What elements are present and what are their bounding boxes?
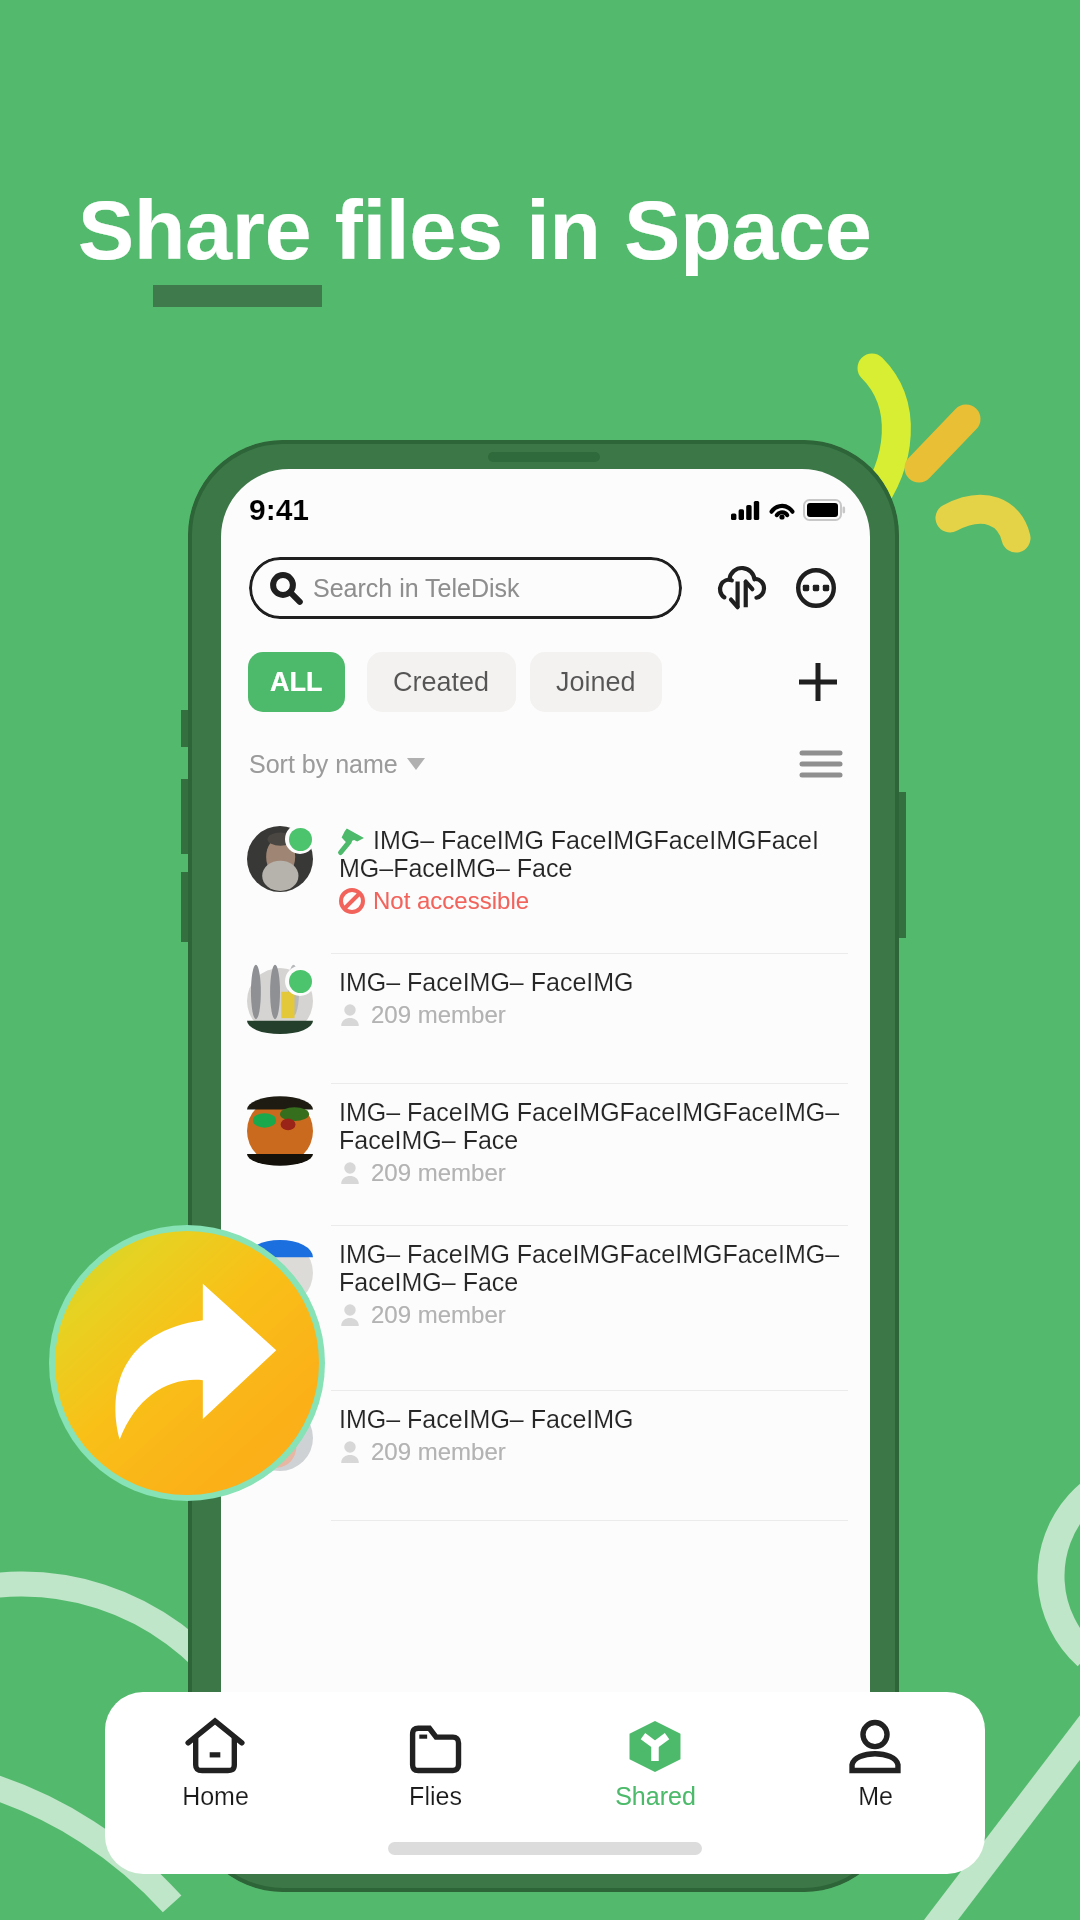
button[interactable]: IMG– FaceIMG FaceIMGFaceIMGFaceIMG– xyxy=(221,1084,870,1225)
button[interactable]: Share xyxy=(55,1231,319,1495)
staticText: Created xyxy=(393,667,490,697)
button[interactable]: Transfers xyxy=(710,556,774,620)
button[interactable]: IMG– FaceIMG– FaceIMG xyxy=(221,1391,870,1520)
staticText: 209 member xyxy=(371,1438,506,1465)
staticText: Me xyxy=(858,1782,893,1810)
button[interactable]: IMG– FaceIMG– FaceIMG xyxy=(221,954,870,1083)
button[interactable]: Me xyxy=(765,1720,985,1810)
staticText: MG–FaceIMG– Face xyxy=(339,854,573,882)
button[interactable]: Home xyxy=(105,1720,325,1810)
button[interactable]: Flies xyxy=(325,1720,545,1810)
staticText: Sort by name xyxy=(249,750,398,778)
button[interactable]: IMG– FaceIMG FaceIMGFaceIMGFaceI xyxy=(221,812,870,953)
button[interactable]: Sort by name xyxy=(249,750,425,778)
staticText: Share files in Space xyxy=(78,183,872,277)
button[interactable]: IMG– FaceIMG FaceIMGFaceIMGFaceIMG– xyxy=(221,1226,870,1390)
staticText: 209 member xyxy=(371,1001,506,1028)
button[interactable]: More options xyxy=(786,556,846,620)
button[interactable]: Add xyxy=(790,654,846,710)
staticText: IMG– FaceIMG FaceIMGFaceIMGFaceI xyxy=(373,826,819,854)
staticText: IMG– FaceIMG– FaceIMG xyxy=(339,968,634,996)
staticText: 209 member xyxy=(371,1301,506,1328)
button[interactable]: Layout xyxy=(797,740,845,788)
staticText: ALL xyxy=(270,667,323,697)
staticText: Flies xyxy=(409,1782,462,1810)
staticText: IMG– FaceIMG FaceIMGFaceIMGFaceIMG– xyxy=(339,1098,840,1126)
staticText: IMG– FaceIMG FaceIMGFaceIMGFaceIMG– xyxy=(339,1240,840,1268)
staticText: Not accessible xyxy=(373,887,530,914)
staticText: Joined xyxy=(556,667,636,697)
staticText: 209 member xyxy=(371,1159,506,1186)
staticText: FaceIMG– Face xyxy=(339,1126,519,1154)
button[interactable]: Shared xyxy=(545,1720,765,1810)
button[interactable]: Joined xyxy=(530,652,662,712)
staticText: Shared xyxy=(615,1782,696,1810)
button[interactable]: Search in TeleDisk xyxy=(249,557,682,619)
staticText: 9:41 xyxy=(249,493,310,527)
staticText: Search in TeleDisk xyxy=(313,574,520,602)
staticText: FaceIMG– Face xyxy=(339,1268,519,1296)
button[interactable]: ALL xyxy=(248,652,345,712)
button[interactable]: Created xyxy=(367,652,516,712)
staticText: IMG– FaceIMG– FaceIMG xyxy=(339,1405,634,1433)
staticText: Home xyxy=(182,1782,249,1810)
